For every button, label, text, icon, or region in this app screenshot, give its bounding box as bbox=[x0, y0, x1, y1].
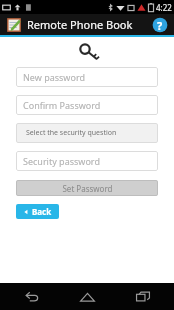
button[interactable]: Set Password bbox=[16, 180, 158, 196]
button[interactable]: Recent apps bbox=[119, 283, 167, 310]
button[interactable]: Help bbox=[152, 17, 168, 33]
staticText: Confirm Password bbox=[23, 99, 101, 111]
button[interactable]: New password bbox=[16, 67, 158, 87]
staticText: Remote Phone Book bbox=[27, 17, 133, 32]
button[interactable]: Security password bbox=[16, 151, 158, 171]
button[interactable]: Back bbox=[8, 283, 56, 310]
staticText: New password bbox=[23, 71, 85, 83]
button[interactable]: Home bbox=[63, 283, 111, 310]
staticText: Set Password bbox=[62, 183, 113, 194]
staticText: 4:22 bbox=[156, 2, 172, 13]
staticText: Select the security question bbox=[26, 128, 117, 138]
button[interactable]: Back bbox=[16, 204, 59, 219]
button[interactable]: Confirm Password bbox=[16, 95, 158, 115]
button[interactable]: Select the security question bbox=[16, 123, 158, 143]
staticText: Back bbox=[32, 206, 52, 217]
staticText: ? bbox=[157, 18, 163, 33]
staticText: Security password bbox=[23, 155, 100, 167]
